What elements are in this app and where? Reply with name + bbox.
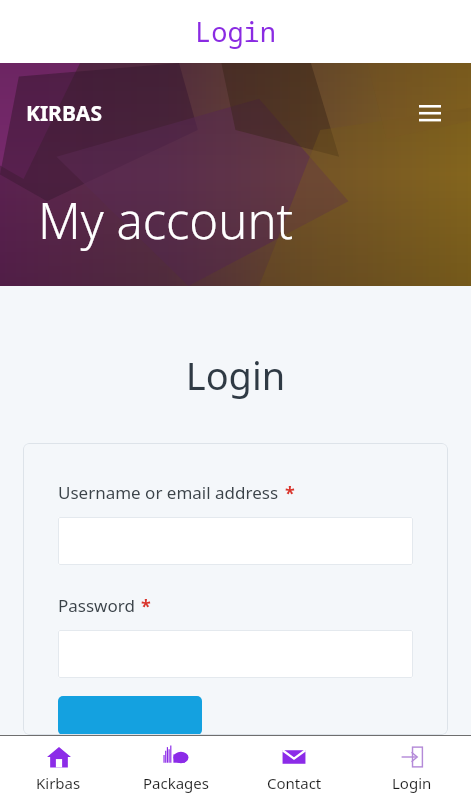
staticText: Login — [195, 13, 276, 50]
staticText: Login — [392, 773, 432, 793]
button[interactable] — [58, 696, 202, 735]
staticText: Login — [0, 349, 471, 401]
staticText: Contact — [267, 773, 322, 793]
button[interactable]: Login — [353, 736, 471, 800]
button[interactable] — [58, 517, 413, 565]
staticText: Kirbas — [36, 773, 81, 793]
staticText: KIRBAS — [26, 99, 102, 128]
staticText: My account — [38, 187, 294, 254]
button[interactable]: Contact — [235, 736, 353, 800]
button[interactable]: Kirbas — [0, 736, 117, 800]
staticText: Username or email address — [58, 481, 279, 504]
staticText: * — [141, 594, 151, 619]
staticText: Password — [58, 594, 135, 617]
button[interactable] — [58, 630, 413, 678]
staticText: * — [285, 481, 295, 506]
button[interactable]: Packages — [117, 736, 235, 800]
button[interactable]: Menu — [415, 99, 445, 129]
staticText: Packages — [143, 773, 209, 793]
